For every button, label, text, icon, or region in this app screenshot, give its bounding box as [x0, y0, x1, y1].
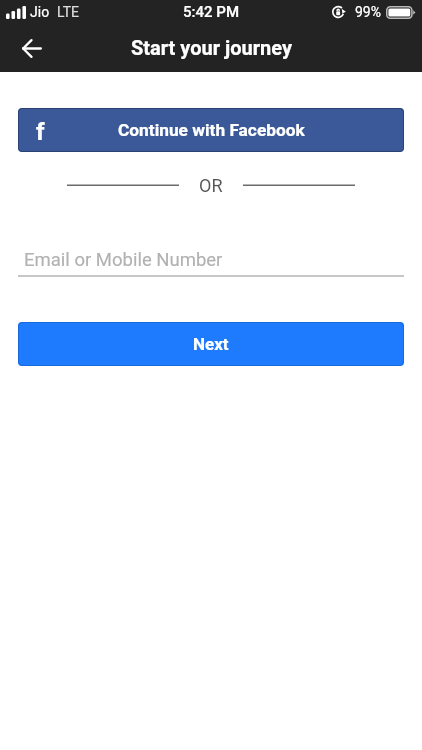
- button[interactable]: Continue with Facebook: [18, 108, 404, 152]
- staticText: LTE: [57, 4, 79, 20]
- staticText: Jio: [30, 4, 50, 20]
- staticText: Start your journey: [131, 36, 292, 59]
- staticText: 99%: [355, 4, 381, 20]
- button[interactable]: Next: [18, 322, 404, 366]
- staticText: Next: [193, 334, 229, 354]
- button[interactable]: Back: [8, 26, 55, 72]
- staticText: Email or Mobile Number: [24, 249, 223, 271]
- staticText: 5:42 PM: [183, 3, 240, 21]
- staticText: Continue with Facebook: [118, 120, 305, 140]
- staticText: OR: [199, 175, 223, 196]
- staticText: f: [36, 118, 45, 146]
